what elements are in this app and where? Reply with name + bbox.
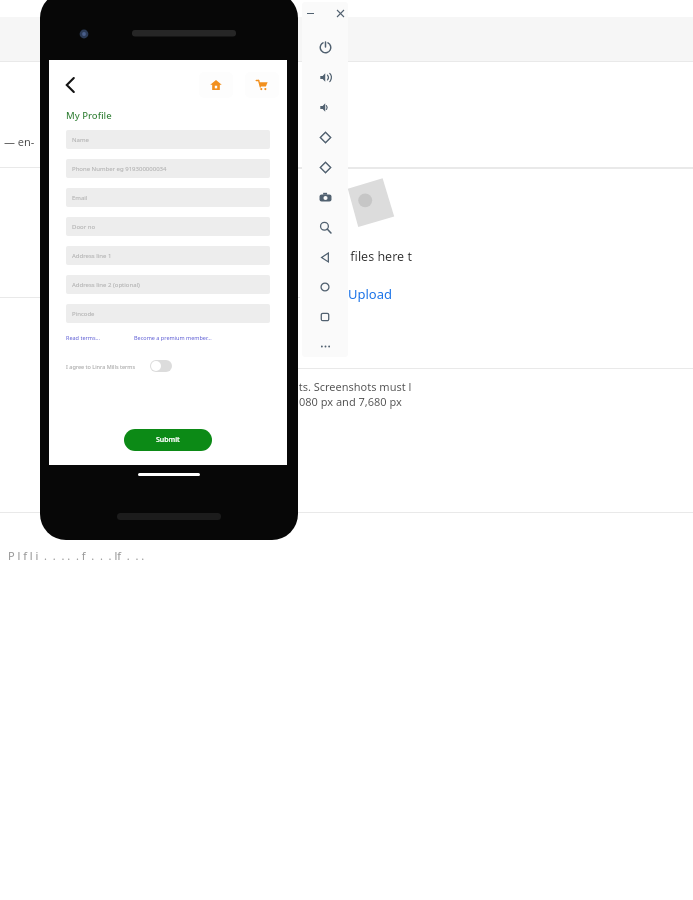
button[interactable]: Phone Number eg 919300000034 bbox=[66, 159, 270, 178]
button[interactable]: Rotate left bbox=[302, 122, 348, 152]
staticText: Name bbox=[72, 136, 89, 144]
button[interactable]: Screenshot bbox=[302, 182, 348, 212]
button[interactable]: Zoom bbox=[302, 212, 348, 242]
staticText: P l f l i . . . . . f . . . lf . . . bbox=[8, 548, 145, 563]
button[interactable]: Become a premium member... bbox=[134, 334, 212, 341]
button[interactable]: Door no bbox=[66, 217, 270, 236]
button[interactable]: Address line 2 (optional) bbox=[66, 275, 270, 294]
staticText: Email bbox=[72, 194, 88, 202]
button[interactable]: Back bbox=[57, 71, 85, 99]
staticText: G files here t bbox=[338, 248, 412, 265]
staticText: ots. Screenshots must l bbox=[292, 379, 412, 394]
button[interactable]: More bbox=[302, 336, 348, 357]
button[interactable]: Power bbox=[302, 32, 348, 62]
button[interactable]: Rotate right bbox=[302, 152, 348, 182]
staticText: — en- bbox=[4, 134, 35, 149]
staticText: Address line 2 (optional) bbox=[72, 281, 140, 289]
button[interactable]: Name bbox=[66, 130, 270, 149]
button[interactable]: Cart bbox=[245, 72, 279, 98]
staticText: Phone Number eg 919300000034 bbox=[72, 165, 167, 173]
button[interactable]: Volume down bbox=[302, 92, 348, 122]
button[interactable]: Pincode bbox=[66, 304, 270, 323]
button[interactable]: Read terms... bbox=[66, 334, 100, 341]
button[interactable]: Submit bbox=[124, 429, 212, 451]
staticText: I agree to Linra Mills terms bbox=[66, 363, 136, 370]
staticText: Submit bbox=[156, 435, 180, 445]
staticText: ,080 px and 7,680 px bbox=[296, 394, 402, 409]
button[interactable]: Home bbox=[302, 272, 348, 302]
staticText: Upload bbox=[348, 285, 393, 303]
button[interactable]: Back bbox=[302, 242, 348, 272]
staticText: Address line 1 bbox=[72, 252, 112, 260]
staticText: Pincode bbox=[72, 310, 95, 318]
staticText: Door no bbox=[72, 223, 96, 231]
button[interactable]: Overview bbox=[302, 302, 348, 332]
button[interactable]: Close bbox=[332, 5, 348, 21]
button[interactable]: Email bbox=[66, 188, 270, 207]
button[interactable]: I agree to Linra Mills terms bbox=[66, 360, 172, 372]
button[interactable]: Volume up bbox=[302, 62, 348, 92]
button[interactable]: Address line 1 bbox=[66, 246, 270, 265]
staticText: My Profile bbox=[66, 109, 112, 122]
button[interactable]: Home bbox=[199, 72, 233, 98]
button[interactable]: Minimize bbox=[302, 5, 318, 21]
